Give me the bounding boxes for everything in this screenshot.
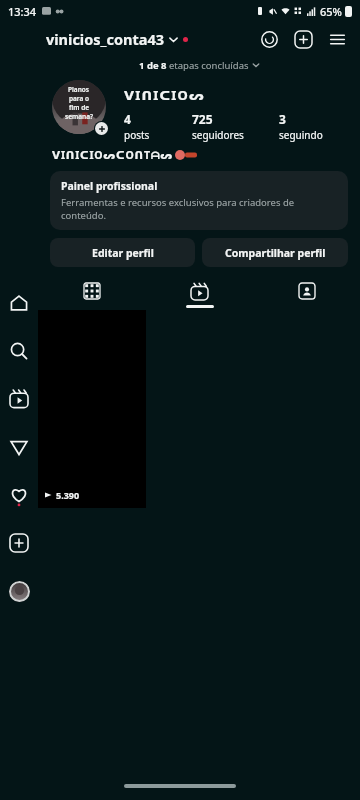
button[interactable]: Profile	[0, 572, 38, 610]
button[interactable]: Menu	[324, 26, 350, 52]
button[interactable]: 1 de 8	[38, 56, 360, 74]
button[interactable]: Reels	[146, 277, 253, 305]
staticText: 5.390	[56, 489, 80, 501]
button[interactable]: Posts grid	[38, 277, 146, 305]
staticText: Painel profissional	[61, 179, 158, 193]
staticText: para o	[69, 94, 90, 103]
staticText: Planos	[68, 85, 90, 94]
button[interactable]: vinicios_conta43	[46, 25, 188, 53]
button[interactable]: Add to story	[95, 122, 108, 135]
button[interactable]: 3	[279, 111, 346, 142]
button[interactable]: 725	[192, 111, 279, 142]
button[interactable]: Reels	[0, 380, 38, 418]
button[interactable]: Home	[0, 284, 38, 322]
button[interactable]: Tagged	[253, 277, 360, 305]
staticText: 65%	[320, 4, 342, 19]
staticText: semana?	[65, 112, 93, 121]
staticText: 13:34	[8, 4, 37, 19]
button[interactable]: Compartilhar perfil	[202, 238, 348, 267]
button[interactable]: 5.390	[38, 310, 146, 508]
staticText: 1 de 8	[139, 59, 169, 72]
staticText: seguidores	[192, 128, 244, 142]
button[interactable]: Editar perfil	[50, 238, 195, 267]
button[interactable]: Planos	[52, 80, 106, 134]
staticText: Editar perfil	[92, 246, 154, 260]
button[interactable]: Painel profissional	[50, 171, 348, 230]
staticText: etapas concluídas	[169, 59, 249, 72]
button[interactable]: Create	[0, 524, 38, 562]
button[interactable]: Search	[0, 332, 38, 370]
staticText: posts	[124, 128, 150, 142]
staticText: vinicios_conta43	[46, 29, 165, 49]
button[interactable]: 4	[124, 111, 192, 142]
staticText: Compartilhar perfil	[225, 246, 326, 260]
staticText: seguindo	[279, 128, 323, 142]
button[interactable]: Create	[290, 26, 316, 52]
button[interactable]: Threads	[256, 26, 282, 52]
staticText: ᐯIᑎIᑕIOᔕᑕOᑎTᗩᔕ	[52, 148, 173, 162]
staticText: 725	[192, 111, 213, 127]
staticText: ᐯIᑎIᑕIOᔕ	[124, 86, 206, 104]
staticText: 3	[279, 111, 286, 127]
button[interactable]: Notifications	[0, 476, 38, 514]
button[interactable]: Messages	[0, 428, 38, 466]
staticText: fim de	[69, 103, 90, 112]
staticText: 4	[124, 111, 131, 127]
staticText: Ferramentas e recursos exclusivos para c…	[61, 196, 337, 222]
